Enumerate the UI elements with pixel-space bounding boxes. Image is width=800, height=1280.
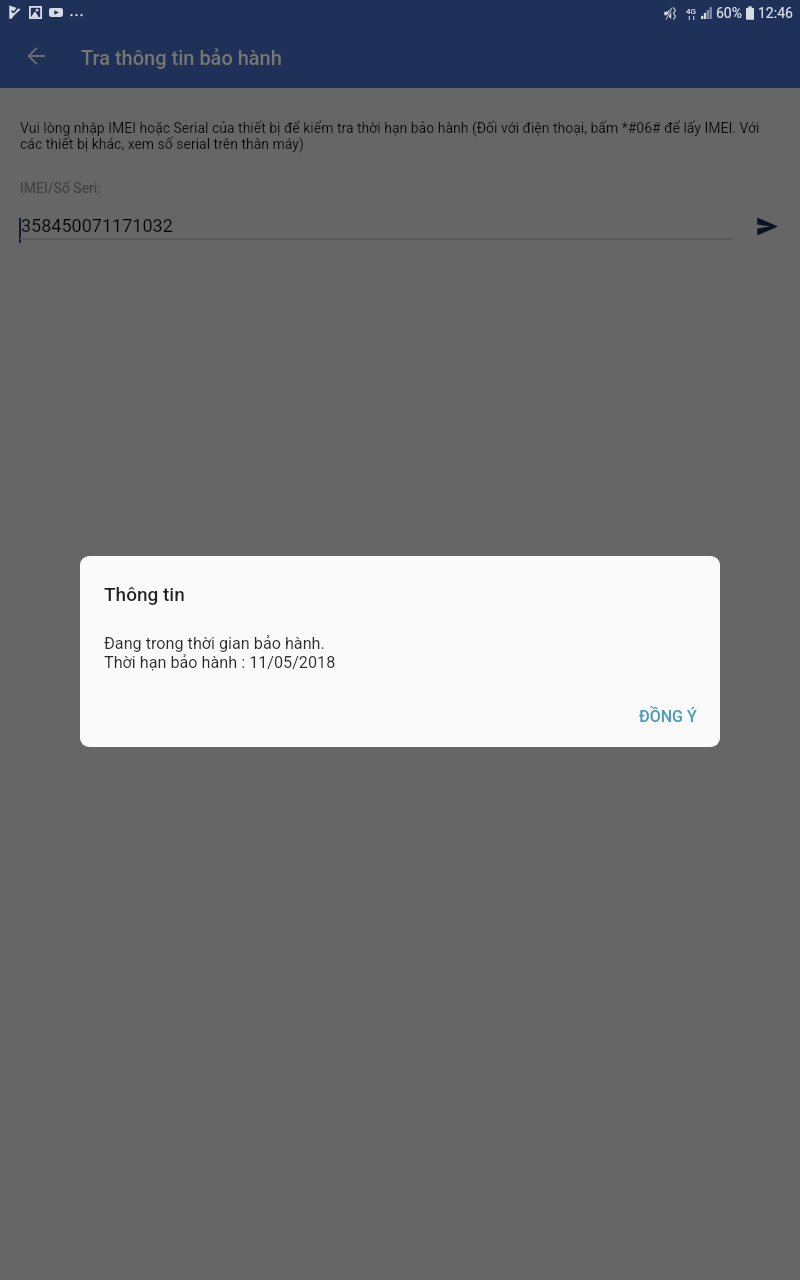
staticText: Đang trong thời gian bảo hành. Thời hạn … xyxy=(104,634,336,672)
staticText: 358450071171032 xyxy=(21,215,173,236)
staticText: IMEI/Số Seri: xyxy=(20,180,101,196)
button[interactable]: Back xyxy=(14,34,58,78)
button[interactable] xyxy=(20,207,733,240)
staticText: 60% xyxy=(716,5,742,21)
button[interactable]: ĐỒNG Ý xyxy=(628,694,708,738)
staticText: ĐỒNG Ý xyxy=(639,707,697,726)
staticText: Vui lòng nhập IMEI hoặc Serial của thiết… xyxy=(20,120,780,152)
staticText: Thông tin xyxy=(104,583,185,605)
staticText: 12:46 xyxy=(758,5,793,21)
staticText: 4G xyxy=(686,7,696,16)
button[interactable]: Send xyxy=(750,209,785,244)
staticText: Tra thông tin bảo hành xyxy=(81,46,282,69)
